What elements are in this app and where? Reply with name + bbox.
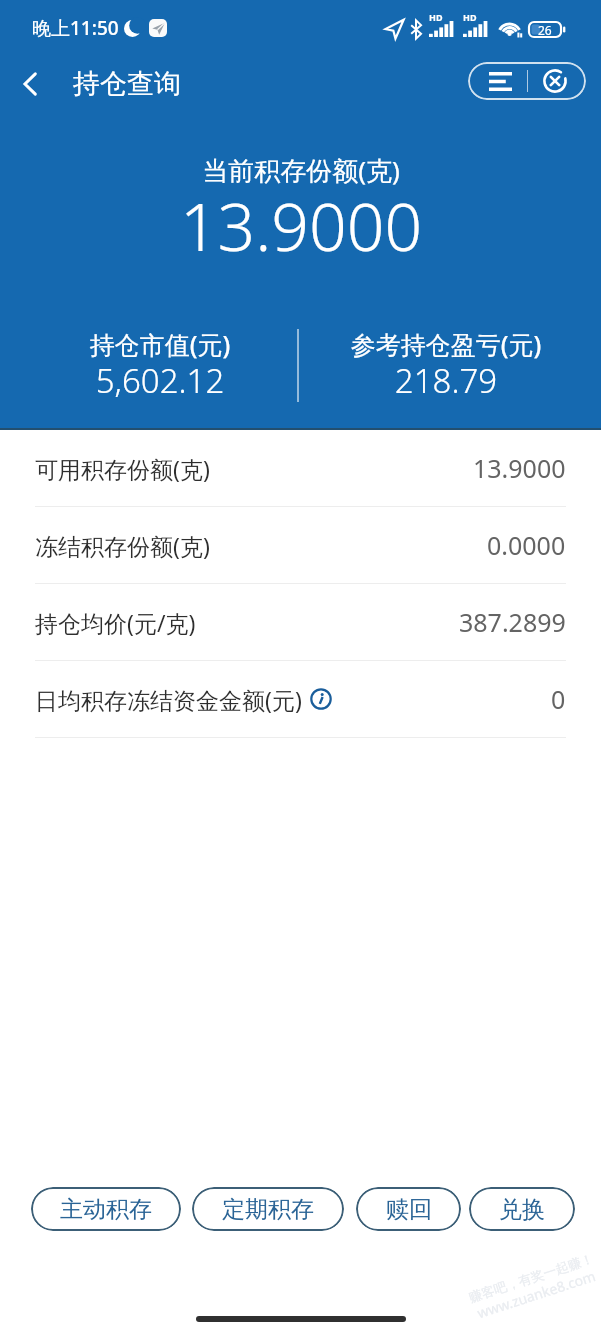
staticText: 0.0000 bbox=[487, 528, 566, 562]
staticText: www.zuanke8.com bbox=[475, 1266, 598, 1322]
staticText: 13.9000 bbox=[473, 451, 566, 485]
staticText: 387.2899 bbox=[459, 605, 566, 639]
button[interactable]: Back bbox=[8, 62, 52, 106]
staticText: HD bbox=[463, 11, 477, 23]
staticText: 可用积存份额(克) bbox=[35, 453, 210, 484]
button[interactable]: Menu bbox=[481, 62, 519, 100]
staticText: 持仓均价(元/克) bbox=[35, 607, 196, 638]
staticText: 13.9000 bbox=[151, 180, 451, 270]
button[interactable]: 赎回 bbox=[356, 1187, 461, 1231]
button[interactable]: 兑换 bbox=[469, 1187, 575, 1231]
staticText: HD bbox=[429, 11, 443, 23]
staticText: 当前积存份额(克) bbox=[151, 152, 451, 188]
button[interactable]: 持仓均价(元/克) bbox=[35, 584, 566, 661]
staticText: 赎回 bbox=[386, 1195, 432, 1224]
staticText: 持仓查询 bbox=[73, 67, 181, 101]
staticText: 冻结积存份额(克) bbox=[35, 530, 210, 561]
staticText: 晚上11:50 bbox=[32, 15, 119, 41]
button[interactable]: 日均积存冻结资金金额(元) bbox=[35, 661, 566, 738]
button[interactable]: 冻结积存份额(克) bbox=[35, 507, 566, 584]
staticText: 218.79 bbox=[296, 358, 596, 403]
button[interactable]: 主动积存 bbox=[31, 1187, 181, 1231]
staticText: 26 bbox=[538, 22, 552, 37]
staticText: 兑换 bbox=[499, 1195, 545, 1224]
staticText: 0 bbox=[551, 682, 566, 716]
button[interactable]: Close bbox=[536, 62, 574, 100]
staticText: 持仓市值(元) bbox=[10, 327, 310, 361]
staticText: 日均积存冻结资金金额(元) bbox=[35, 684, 302, 715]
button[interactable]: 定期积存 bbox=[192, 1187, 344, 1231]
staticText: 5,602.12 bbox=[10, 358, 310, 403]
staticText: 赚客吧，有奖一起赚！ bbox=[467, 1250, 595, 1305]
button[interactable]: 可用积存份额(克) bbox=[35, 430, 566, 507]
staticText: 参考持仓盈亏(元) bbox=[296, 327, 596, 361]
staticText: 定期积存 bbox=[222, 1195, 314, 1224]
staticText: 主动积存 bbox=[60, 1195, 152, 1224]
